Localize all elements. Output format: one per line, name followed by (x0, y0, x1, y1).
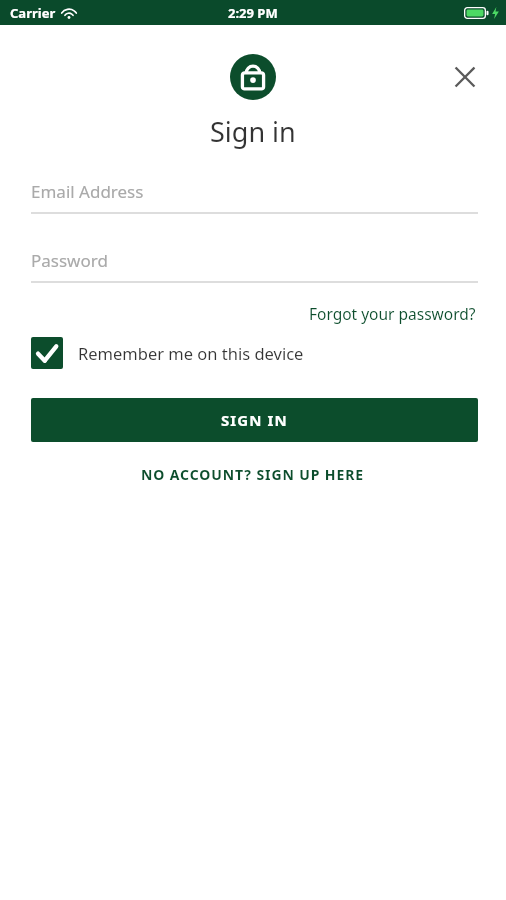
staticText: Email Address (31, 180, 144, 203)
button[interactable]: Remember me on this device (31, 337, 478, 369)
button[interactable]: Forgot your password? (307, 300, 478, 327)
staticText: Forgot your password? (309, 303, 476, 324)
button[interactable]: Secure sign in (230, 54, 276, 100)
button[interactable]: Password (31, 247, 478, 283)
staticText: Remember me on this device (78, 342, 304, 364)
button[interactable]: NO ACCOUNT? SIGN UP HERE (135, 461, 371, 488)
staticText: SIGN IN (221, 410, 288, 430)
staticText: Sign in (210, 113, 296, 150)
button[interactable]: Email Address (31, 178, 478, 214)
staticText: Carrier (10, 4, 56, 22)
button[interactable]: SIGN IN (31, 398, 478, 442)
staticText: 2:29 PM (228, 4, 278, 22)
staticText: Password (31, 249, 108, 272)
staticText: NO ACCOUNT? SIGN UP HERE (141, 465, 365, 484)
button[interactable]: Close (446, 58, 484, 96)
